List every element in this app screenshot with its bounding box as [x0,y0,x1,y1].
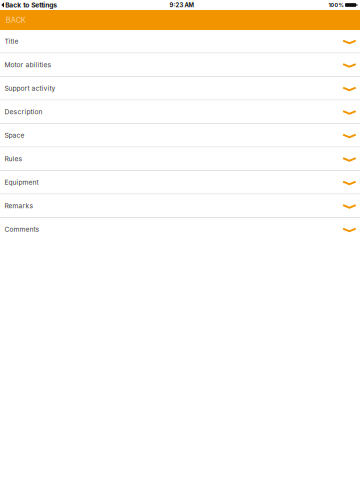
staticText: Remarks [5,202,34,210]
button[interactable]: Equipment [0,171,360,194]
button[interactable]: Space [0,124,360,147]
staticText: Comments [5,225,40,233]
button[interactable]: Description [0,100,360,124]
staticText: 9:23 AM [169,1,193,9]
button[interactable]: Rules [0,147,360,171]
staticText: Rules [5,155,23,163]
staticText: Equipment [5,178,39,186]
staticText: BACK [6,15,26,24]
button[interactable]: Comments [0,218,360,241]
staticText: Motor abilities [5,61,52,69]
staticText: Back to Settings [5,1,57,9]
staticText: 100% [328,2,343,8]
staticText: Description [5,108,43,116]
button[interactable]: Support activity [0,77,360,100]
button[interactable]: Title [0,30,360,53]
button[interactable]: Motor abilities [0,53,360,77]
staticText: Space [5,131,25,139]
staticText: Support activity [5,84,56,92]
staticText: Title [5,37,19,45]
button[interactable]: BACK [0,10,32,30]
button[interactable]: Back to Settings [0,0,60,10]
button[interactable]: Remarks [0,194,360,218]
